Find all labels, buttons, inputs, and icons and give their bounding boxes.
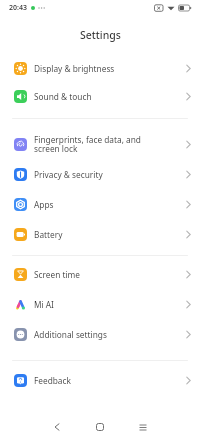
button[interactable]: Feedback [0,365,200,395]
staticText: 20:43 [9,3,27,13]
button[interactable]: Screen time [0,259,200,289]
staticText: Privacy & security [34,169,186,180]
staticText: Mi AI [34,299,186,310]
button[interactable]: Battery [0,219,200,249]
staticText: Screen time [34,269,186,280]
button[interactable]: Privacy & security [0,159,200,189]
button[interactable]: Fingerprints, face data, and screen lock [0,129,200,159]
staticText: Fingerprints, face data, and screen lock [34,134,186,155]
button[interactable]: Sound & touch [0,82,200,110]
staticText: Feedback [34,375,186,386]
button[interactable] [47,417,67,437]
staticText: Settings [80,28,121,42]
button[interactable]: Mi AI [0,289,200,319]
button[interactable]: Additional settings [0,319,200,349]
staticText: Display & brightness [34,63,186,74]
button[interactable] [90,417,110,437]
button[interactable]: Display & brightness [0,54,200,82]
staticText: Additional settings [34,329,186,340]
button[interactable] [133,417,153,437]
staticText: Battery [34,229,186,240]
button[interactable]: Apps [0,189,200,219]
staticText: Apps [34,199,186,210]
staticText: Sound & touch [34,91,186,102]
